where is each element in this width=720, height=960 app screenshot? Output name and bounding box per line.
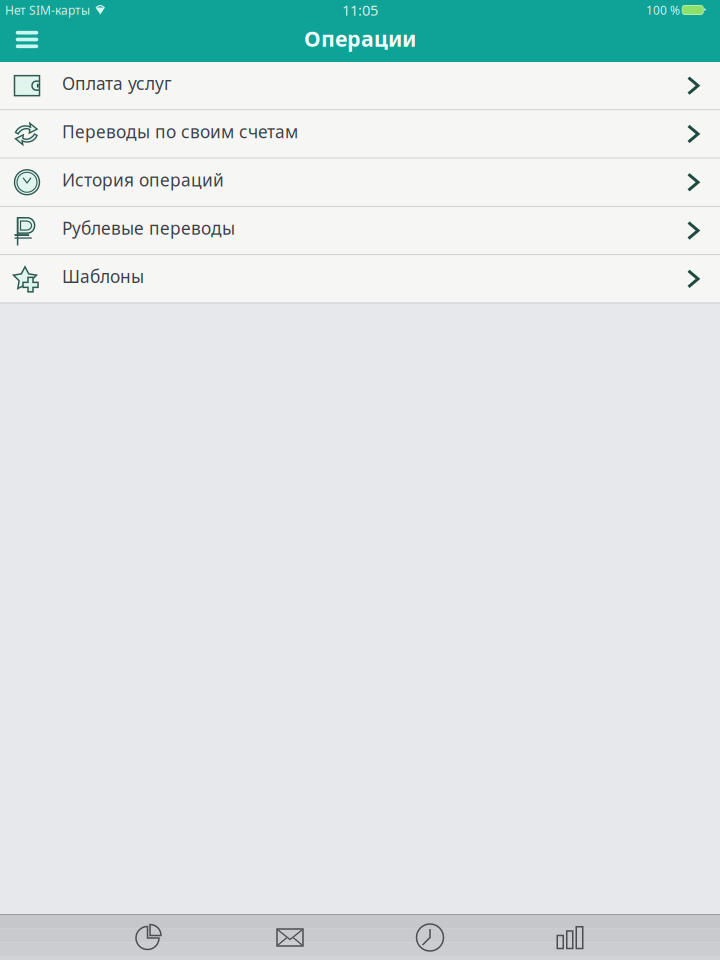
button[interactable]: Обзор	[80, 915, 220, 960]
staticText: Шаблоны	[62, 265, 144, 288]
button[interactable]: Статистика	[500, 915, 640, 960]
button[interactable]: Оплата услуг	[0, 62, 720, 109]
button[interactable]: Переводы по своим счетам	[0, 110, 720, 158]
staticText: Рублевые переводы	[62, 216, 235, 239]
button[interactable]: Рублевые переводы	[0, 207, 720, 254]
button[interactable]: История операций	[0, 159, 720, 206]
staticText: 11:05	[342, 0, 378, 20]
button[interactable]: Сообщения	[220, 915, 360, 960]
staticText: 100 %	[646, 2, 680, 18]
staticText: Оплата услуг	[62, 72, 172, 95]
button[interactable]: Шаблоны	[0, 255, 720, 302]
staticText: Нет SIM-карты	[5, 2, 90, 18]
staticText: Переводы по своим счетам	[62, 120, 298, 143]
button[interactable]: История	[360, 915, 500, 960]
staticText: История операций	[62, 168, 224, 191]
staticText: Операции	[304, 24, 416, 53]
button[interactable]: Меню	[8, 20, 46, 58]
